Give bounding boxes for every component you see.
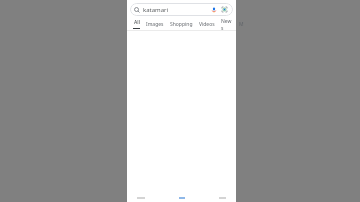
staticText: Videos	[199, 21, 215, 28]
button[interactable]: Images	[143, 18, 167, 30]
button[interactable]: All	[130, 18, 143, 30]
button[interactable]: Shopping	[167, 18, 196, 30]
staticText: All	[134, 19, 140, 26]
staticText: News	[221, 18, 233, 30]
button[interactable]: Google Lens	[220, 5, 229, 14]
staticText: Images	[146, 21, 164, 28]
button[interactable]: Voice search	[209, 5, 218, 14]
button[interactable]: News	[218, 18, 236, 30]
staticText: Shopping	[170, 21, 193, 28]
button[interactable]: katamari	[130, 3, 233, 16]
button[interactable]: Videos	[196, 18, 218, 30]
staticText: katamari	[143, 6, 169, 14]
